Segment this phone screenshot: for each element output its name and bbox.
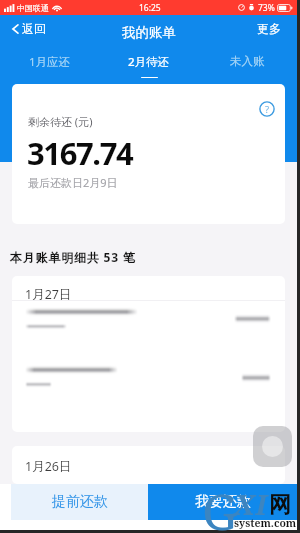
button[interactable]: 提前还款	[11, 484, 148, 520]
staticText: G	[202, 477, 238, 533]
button[interactable]: 返回	[0, 17, 60, 41]
staticText: 3167.74	[27, 132, 133, 174]
staticText: 本月账单明细共 53 笔	[10, 249, 136, 265]
staticText: 1月27日	[25, 286, 72, 303]
staticText: 返回	[22, 21, 46, 36]
staticText: 我要还款	[195, 493, 251, 511]
button[interactable]: 2月待还	[99, 48, 198, 78]
button[interactable]	[12, 360, 285, 418]
staticText: 1月26日	[25, 458, 72, 475]
staticText: 最后还款日2月9日	[28, 175, 118, 190]
staticText: XI	[234, 485, 268, 523]
staticText: system.com	[234, 516, 297, 530]
button[interactable]: 帮助	[259, 101, 275, 117]
staticText: 网	[269, 491, 291, 519]
staticText: 1月应还	[29, 54, 71, 70]
staticText: 提前还款	[52, 493, 108, 511]
staticText: 剩余待还 (元)	[28, 114, 93, 129]
staticText: 73%	[258, 2, 275, 14]
button[interactable]: 更多	[243, 17, 297, 41]
button[interactable]	[12, 301, 285, 360]
staticText: 未入账	[230, 54, 265, 68]
button[interactable]: 剩余待还 (元)	[12, 84, 285, 224]
staticText: ?	[265, 103, 270, 116]
staticText: 我的账单	[122, 24, 176, 41]
button[interactable]: 我要还款	[148, 484, 297, 520]
button[interactable]: 未入账	[198, 48, 297, 78]
staticText: 更多	[257, 21, 281, 36]
button[interactable]: 1月应还	[0, 48, 99, 78]
staticText: 中国联通	[17, 3, 49, 13]
staticText: 16:25	[139, 2, 161, 14]
staticText: 2月待还	[128, 54, 170, 70]
other: AssistiveTouch	[253, 426, 292, 467]
